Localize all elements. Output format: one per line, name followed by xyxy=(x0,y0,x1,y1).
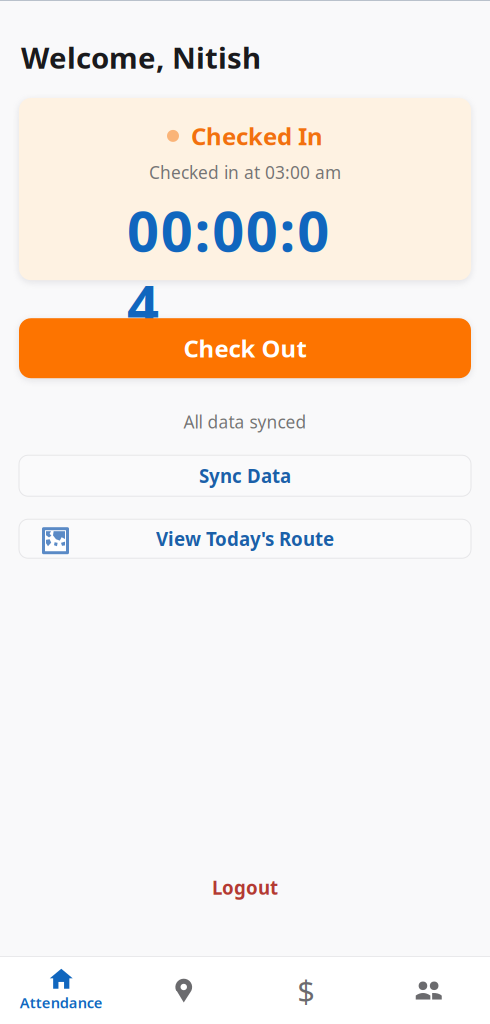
button[interactable]: Attendance xyxy=(0,957,122,1024)
staticText: Sync Data xyxy=(199,463,291,488)
staticText: Welcome, Nitish xyxy=(21,38,261,77)
button[interactable]: View Today's Route xyxy=(19,519,471,558)
button[interactable]: Check Out xyxy=(19,318,471,378)
staticText: View Today's Route xyxy=(156,526,334,551)
button[interactable]: Team xyxy=(367,957,490,1024)
button[interactable]: Payments xyxy=(245,957,367,1024)
staticText: Checked In xyxy=(191,120,323,152)
staticText: Attendance xyxy=(20,993,103,1012)
button[interactable]: Sync Data xyxy=(19,455,471,496)
staticText: $ xyxy=(297,970,315,1011)
staticText: Check Out xyxy=(183,332,306,364)
staticText: Logout xyxy=(212,875,278,900)
button[interactable]: Locations xyxy=(122,957,245,1024)
staticText: 00:00:04 xyxy=(127,193,363,267)
button[interactable]: Logout xyxy=(0,865,490,910)
staticText: Checked in at 03:00 am xyxy=(149,161,341,184)
staticText: All data synced xyxy=(183,410,306,433)
